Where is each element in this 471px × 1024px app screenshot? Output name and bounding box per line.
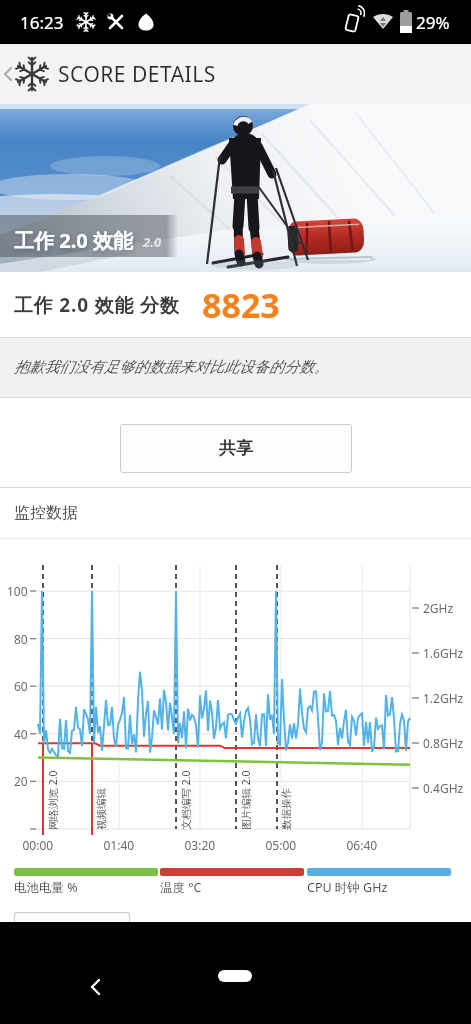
staticText: 16:23 [20, 11, 64, 34]
staticText: 工作 2.0 效能 [14, 227, 133, 254]
button[interactable] [218, 970, 252, 982]
staticText: 共享 [219, 438, 253, 459]
staticText: SCORE DETAILS [58, 60, 216, 89]
button[interactable] [86, 978, 106, 998]
staticText: 监控数据 [14, 503, 78, 523]
staticText: 抱歉我们没有足够的数据来对比此设备的分数。 [14, 358, 329, 377]
staticText: 8823 [202, 282, 280, 328]
staticText: 工作 2.0 效能 分数 [14, 292, 180, 318]
staticText: 29% [416, 11, 450, 34]
button[interactable]: 共享 [120, 424, 352, 473]
staticText: 2.0 [143, 233, 162, 251]
button[interactable]: SCORE DETAILS [0, 44, 216, 104]
